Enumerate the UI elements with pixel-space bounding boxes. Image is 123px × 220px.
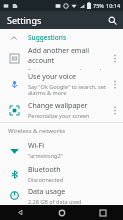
staticText: Disconnected	[28, 176, 64, 183]
button[interactable]: Suggestions	[0, 29, 123, 46]
staticText: 2.28 GB of data used	[28, 198, 82, 205]
staticText: Add another email account	[28, 46, 107, 66]
staticText: 10:14	[106, 2, 121, 9]
staticText: 75%	[93, 2, 104, 9]
staticText: Say "Ok Google" to search, set alarms & …	[28, 83, 107, 97]
staticText: Use your voice	[28, 72, 76, 82]
button[interactable]: Search	[105, 13, 119, 27]
staticText: "armstrong2"	[28, 152, 63, 159]
staticText: Data usage	[28, 187, 66, 197]
staticText: Personalize your screen	[28, 112, 90, 119]
staticText: Bluetooth	[28, 165, 61, 175]
staticText: Suggestions	[28, 33, 67, 42]
button[interactable]: Add another email account	[0, 46, 123, 70]
button[interactable]: More options	[107, 70, 123, 98]
button[interactable]: Back	[0, 205, 41, 220]
staticText: Wireless & networks	[8, 127, 66, 135]
button[interactable]: Wi-Fi	[0, 138, 123, 162]
staticText: Set up your personal or work email	[28, 67, 107, 70]
button[interactable]: Recent apps	[82, 205, 123, 220]
staticText: Wi-Fi	[28, 141, 45, 151]
button[interactable]: Home	[41, 205, 82, 220]
staticText: Settings	[7, 14, 42, 26]
button[interactable]: Change wallpaper	[0, 98, 123, 122]
button[interactable]: Data usage	[0, 186, 123, 205]
staticText: Change wallpaper	[28, 101, 88, 111]
button[interactable]: More options	[107, 98, 123, 122]
button[interactable]: Use your voice	[0, 70, 123, 98]
button[interactable]: Bluetooth	[0, 162, 123, 186]
button[interactable]: More options	[107, 46, 123, 70]
